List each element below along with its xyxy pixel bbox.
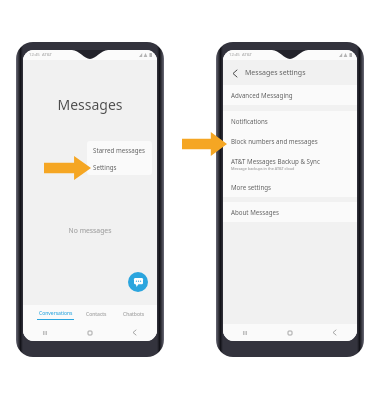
staticText: AT&T [42,52,52,58]
staticText: Starred messages [93,146,145,154]
staticText: Settings [93,163,117,171]
staticText: AT&T [242,52,252,58]
button[interactable]: Notifications [223,111,357,131]
staticText: Notifications [231,117,268,125]
staticText: Contacts [86,311,107,318]
staticText: About Messages [231,208,279,216]
staticText: 12:45 [29,52,40,58]
button[interactable]: Block numbers and messages [223,131,357,151]
button[interactable]: About Messages [223,202,357,222]
staticText: Block numbers and messages [231,137,318,145]
button[interactable]: Recents [23,324,67,341]
button[interactable]: Chatbots [115,305,152,324]
button[interactable]: Back [112,324,157,341]
button[interactable]: New message [128,272,148,292]
staticText: Message backups in the AT&T cloud [231,166,295,171]
button[interactable]: Advanced Messaging [223,85,357,105]
button[interactable]: Conversations [32,305,78,324]
staticText: Chatbots [123,311,145,318]
button[interactable]: Home [67,324,112,341]
button[interactable]: Back [312,324,357,341]
button[interactable]: More settings [223,177,357,197]
staticText: Messages [23,95,157,114]
staticText: Advanced Messaging [231,91,293,99]
button[interactable]: Contacts [78,305,115,324]
button[interactable]: AT&T Messages Backup & Sync [223,151,357,177]
button[interactable]: Starred messages [87,141,152,158]
button[interactable]: Settings [87,158,152,175]
staticText: AT&T Messages Backup & Sync [231,157,320,165]
staticText: More settings [231,183,271,191]
button[interactable]: Back [230,68,240,78]
staticText: No messages [23,226,157,235]
staticText: Conversations [39,310,73,317]
staticText: Messages settings [245,68,306,78]
staticText: 12:45 [229,52,240,58]
button[interactable]: Home [267,324,312,341]
button[interactable]: Recents [223,324,267,341]
